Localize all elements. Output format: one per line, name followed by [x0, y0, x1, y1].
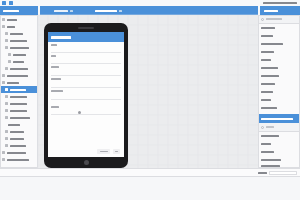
button[interactable] [0, 16, 38, 23]
button[interactable] [0, 93, 38, 100]
button[interactable] [0, 51, 38, 58]
button[interactable] [258, 56, 300, 64]
button[interactable] [48, 32, 124, 42]
button[interactable] [258, 64, 300, 72]
button[interactable] [269, 171, 297, 175]
button[interactable] [113, 149, 120, 154]
button[interactable]: Save [9, 1, 13, 5]
button[interactable] [48, 106, 124, 115]
button[interactable] [91, 6, 126, 15]
button[interactable] [258, 104, 300, 112]
button[interactable] [0, 100, 38, 107]
button[interactable]: Home [84, 160, 89, 165]
button[interactable] [48, 90, 124, 100]
button[interactable] [0, 37, 38, 44]
button[interactable] [258, 40, 300, 48]
button[interactable] [0, 121, 38, 128]
button[interactable] [0, 65, 38, 72]
button[interactable] [258, 15, 300, 23]
button[interactable] [258, 140, 300, 148]
button[interactable] [0, 128, 38, 135]
button[interactable] [258, 114, 300, 123]
button[interactable] [0, 23, 38, 30]
button[interactable] [48, 55, 124, 64]
button[interactable] [0, 58, 38, 65]
button[interactable] [258, 156, 300, 164]
button[interactable] [0, 86, 38, 93]
button[interactable] [258, 132, 300, 140]
button[interactable] [0, 79, 38, 86]
button[interactable] [260, 6, 300, 15]
button[interactable] [258, 164, 300, 168]
button[interactable] [0, 149, 38, 156]
button[interactable] [258, 96, 300, 104]
button[interactable]: New [2, 1, 6, 5]
button[interactable] [48, 78, 124, 88]
button[interactable] [0, 135, 38, 142]
button[interactable] [0, 114, 38, 121]
button[interactable] [258, 48, 300, 56]
button[interactable] [0, 72, 38, 79]
button[interactable] [258, 123, 300, 131]
button[interactable] [48, 44, 124, 53]
button[interactable] [258, 24, 300, 32]
button[interactable] [0, 30, 38, 37]
button[interactable] [258, 80, 300, 88]
button[interactable] [258, 72, 300, 80]
button[interactable] [50, 6, 77, 15]
button[interactable] [0, 142, 38, 149]
button[interactable] [258, 32, 300, 40]
button[interactable] [97, 149, 110, 154]
button[interactable] [0, 156, 38, 163]
button[interactable] [0, 44, 38, 51]
button[interactable] [48, 66, 124, 76]
button[interactable] [0, 107, 38, 114]
button[interactable] [258, 88, 300, 96]
button[interactable] [258, 148, 300, 156]
button[interactable] [0, 6, 38, 15]
